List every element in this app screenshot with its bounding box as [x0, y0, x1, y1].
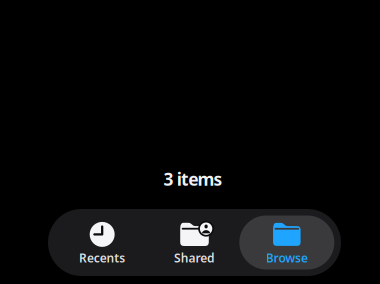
staticText: 3 items — [163, 167, 223, 190]
button[interactable]: Shared — [148, 209, 241, 276]
button[interactable]: Recents — [56, 209, 148, 276]
button[interactable]: Browse — [241, 209, 333, 276]
staticText: Browse — [266, 250, 308, 266]
staticText: Shared — [174, 250, 215, 266]
staticText: Recents — [79, 250, 125, 266]
